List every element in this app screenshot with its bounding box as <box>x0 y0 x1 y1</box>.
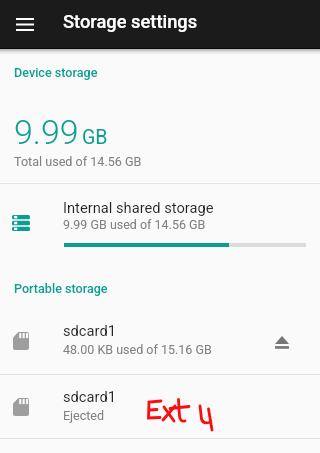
button[interactable]: sdcard1 <box>0 377 320 438</box>
staticText: sdcard1 <box>63 322 116 339</box>
staticText: 9.99 <box>14 112 79 152</box>
staticText: sdcard1 <box>63 388 116 405</box>
button[interactable]: Internal shared storage <box>0 184 320 254</box>
staticText: Internal shared storage <box>63 199 214 216</box>
staticText: 9.99 GB used of 14.56 GB <box>63 217 206 232</box>
button[interactable]: sdcard1 <box>0 311 320 374</box>
button[interactable]: Eject <box>266 311 298 374</box>
staticText: Storage settings <box>63 11 198 32</box>
staticText: Total used of 14.56 GB <box>14 154 142 169</box>
staticText: GB <box>82 126 108 149</box>
staticText: Portable storage <box>14 281 108 296</box>
button[interactable]: Menu <box>11 10 39 38</box>
staticText: Ejected <box>63 408 105 423</box>
staticText: Device storage <box>14 65 98 80</box>
staticText: 48.00 KB used of 15.16 GB <box>63 342 212 357</box>
